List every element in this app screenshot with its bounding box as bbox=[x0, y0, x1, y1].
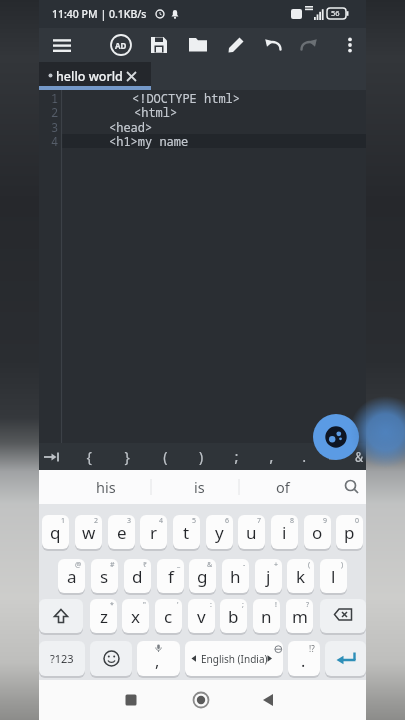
button[interactable]: , bbox=[262, 445, 280, 468]
button[interactable] bbox=[260, 31, 288, 59]
staticText: ₹ bbox=[143, 560, 148, 570]
staticText: e bbox=[117, 521, 127, 544]
staticText: 4 bbox=[51, 133, 59, 149]
staticText: ( bbox=[308, 560, 311, 570]
staticText: v bbox=[197, 605, 206, 628]
button[interactable]: m bbox=[286, 599, 313, 633]
button[interactable]: h bbox=[222, 559, 249, 593]
button[interactable]: English (India) bbox=[185, 641, 283, 676]
staticText: { bbox=[85, 447, 94, 466]
button[interactable]: ?123 bbox=[39, 641, 85, 676]
button[interactable]: d bbox=[124, 559, 151, 593]
staticText: 56 bbox=[331, 8, 340, 18]
button[interactable]: ; bbox=[227, 445, 245, 468]
button[interactable] bbox=[184, 31, 212, 59]
staticText: !? bbox=[309, 643, 315, 654]
staticText: & bbox=[207, 560, 213, 570]
button[interactable]: p bbox=[336, 515, 363, 549]
button[interactable] bbox=[185, 684, 217, 716]
button[interactable]: e bbox=[108, 515, 135, 549]
button[interactable]: k bbox=[287, 559, 314, 593]
button[interactable] bbox=[41, 445, 63, 468]
button[interactable]: g bbox=[189, 559, 216, 593]
button[interactable] bbox=[123, 68, 139, 84]
button[interactable] bbox=[336, 31, 364, 59]
button[interactable]: n bbox=[253, 599, 280, 633]
staticText: ? bbox=[306, 600, 310, 610]
staticText: & bbox=[355, 447, 364, 466]
button[interactable]: of bbox=[243, 470, 323, 504]
button[interactable]: AD bbox=[107, 31, 135, 59]
button[interactable]: o bbox=[304, 515, 331, 549]
button[interactable]: l bbox=[320, 559, 347, 593]
button[interactable] bbox=[294, 31, 322, 59]
button[interactable]: s bbox=[91, 559, 118, 593]
staticText: = bbox=[328, 447, 337, 466]
button[interactable]: f bbox=[157, 559, 184, 593]
button[interactable]: t bbox=[173, 515, 200, 549]
button[interactable]: } bbox=[118, 445, 136, 468]
staticText: w bbox=[82, 521, 96, 544]
button[interactable]: , bbox=[137, 641, 180, 676]
button[interactable]: his bbox=[66, 470, 146, 504]
button[interactable]: r bbox=[140, 515, 167, 549]
staticText: 1 bbox=[51, 90, 59, 106]
staticText: , bbox=[267, 447, 276, 466]
button[interactable] bbox=[335, 470, 369, 504]
staticText: u bbox=[246, 521, 257, 544]
staticText: 3 bbox=[51, 119, 59, 135]
staticText: m bbox=[292, 605, 308, 628]
button[interactable] bbox=[48, 31, 76, 59]
button[interactable]: hello world bbox=[39, 62, 151, 90]
button[interactable]: j bbox=[255, 559, 282, 593]
staticText: . bbox=[301, 650, 306, 672]
button[interactable]: { bbox=[80, 445, 98, 468]
button[interactable]: . bbox=[295, 445, 313, 468]
button[interactable]: v bbox=[188, 599, 215, 633]
staticText: <!DOCTYPE html> bbox=[132, 90, 241, 106]
staticText: of bbox=[276, 477, 290, 497]
staticText: 5 bbox=[192, 516, 197, 526]
button[interactable]: w bbox=[75, 515, 102, 549]
button[interactable]: = bbox=[323, 445, 341, 468]
button[interactable] bbox=[320, 599, 366, 633]
staticText: f bbox=[168, 565, 174, 588]
button[interactable]: c bbox=[155, 599, 182, 633]
button[interactable] bbox=[145, 31, 173, 59]
staticText: q bbox=[50, 521, 61, 544]
button[interactable]: b bbox=[220, 599, 247, 633]
button[interactable] bbox=[90, 641, 132, 676]
staticText: p bbox=[344, 521, 355, 544]
button[interactable]: a bbox=[58, 559, 85, 593]
button[interactable] bbox=[39, 599, 83, 633]
staticText: n bbox=[261, 605, 272, 628]
staticText: ' bbox=[177, 600, 179, 610]
button[interactable] bbox=[313, 414, 359, 460]
staticText: d bbox=[132, 565, 143, 588]
button[interactable] bbox=[325, 641, 366, 676]
button[interactable]: ) bbox=[192, 445, 210, 468]
button[interactable]: x bbox=[122, 599, 149, 633]
button[interactable]: q bbox=[42, 515, 69, 549]
button[interactable]: is bbox=[159, 470, 239, 504]
staticText: o bbox=[312, 521, 323, 544]
button[interactable]: z bbox=[90, 599, 117, 633]
button[interactable]: . bbox=[288, 641, 320, 676]
button[interactable] bbox=[115, 684, 147, 716]
staticText: i bbox=[282, 521, 287, 544]
button[interactable]: y bbox=[206, 515, 233, 549]
staticText: <h1>my name bbox=[109, 133, 189, 149]
button[interactable]: i bbox=[271, 515, 298, 549]
button[interactable]: & bbox=[350, 445, 368, 468]
staticText: <head> bbox=[109, 119, 153, 135]
button[interactable]: ( bbox=[156, 445, 174, 468]
staticText: AD bbox=[115, 40, 127, 51]
staticText: 7 bbox=[257, 516, 262, 526]
staticText: t bbox=[183, 521, 190, 544]
button[interactable]: u bbox=[238, 515, 265, 549]
staticText: k bbox=[296, 565, 306, 588]
staticText: } bbox=[123, 447, 132, 466]
staticText: b bbox=[228, 605, 239, 628]
button[interactable] bbox=[222, 31, 250, 59]
button[interactable] bbox=[252, 684, 284, 716]
